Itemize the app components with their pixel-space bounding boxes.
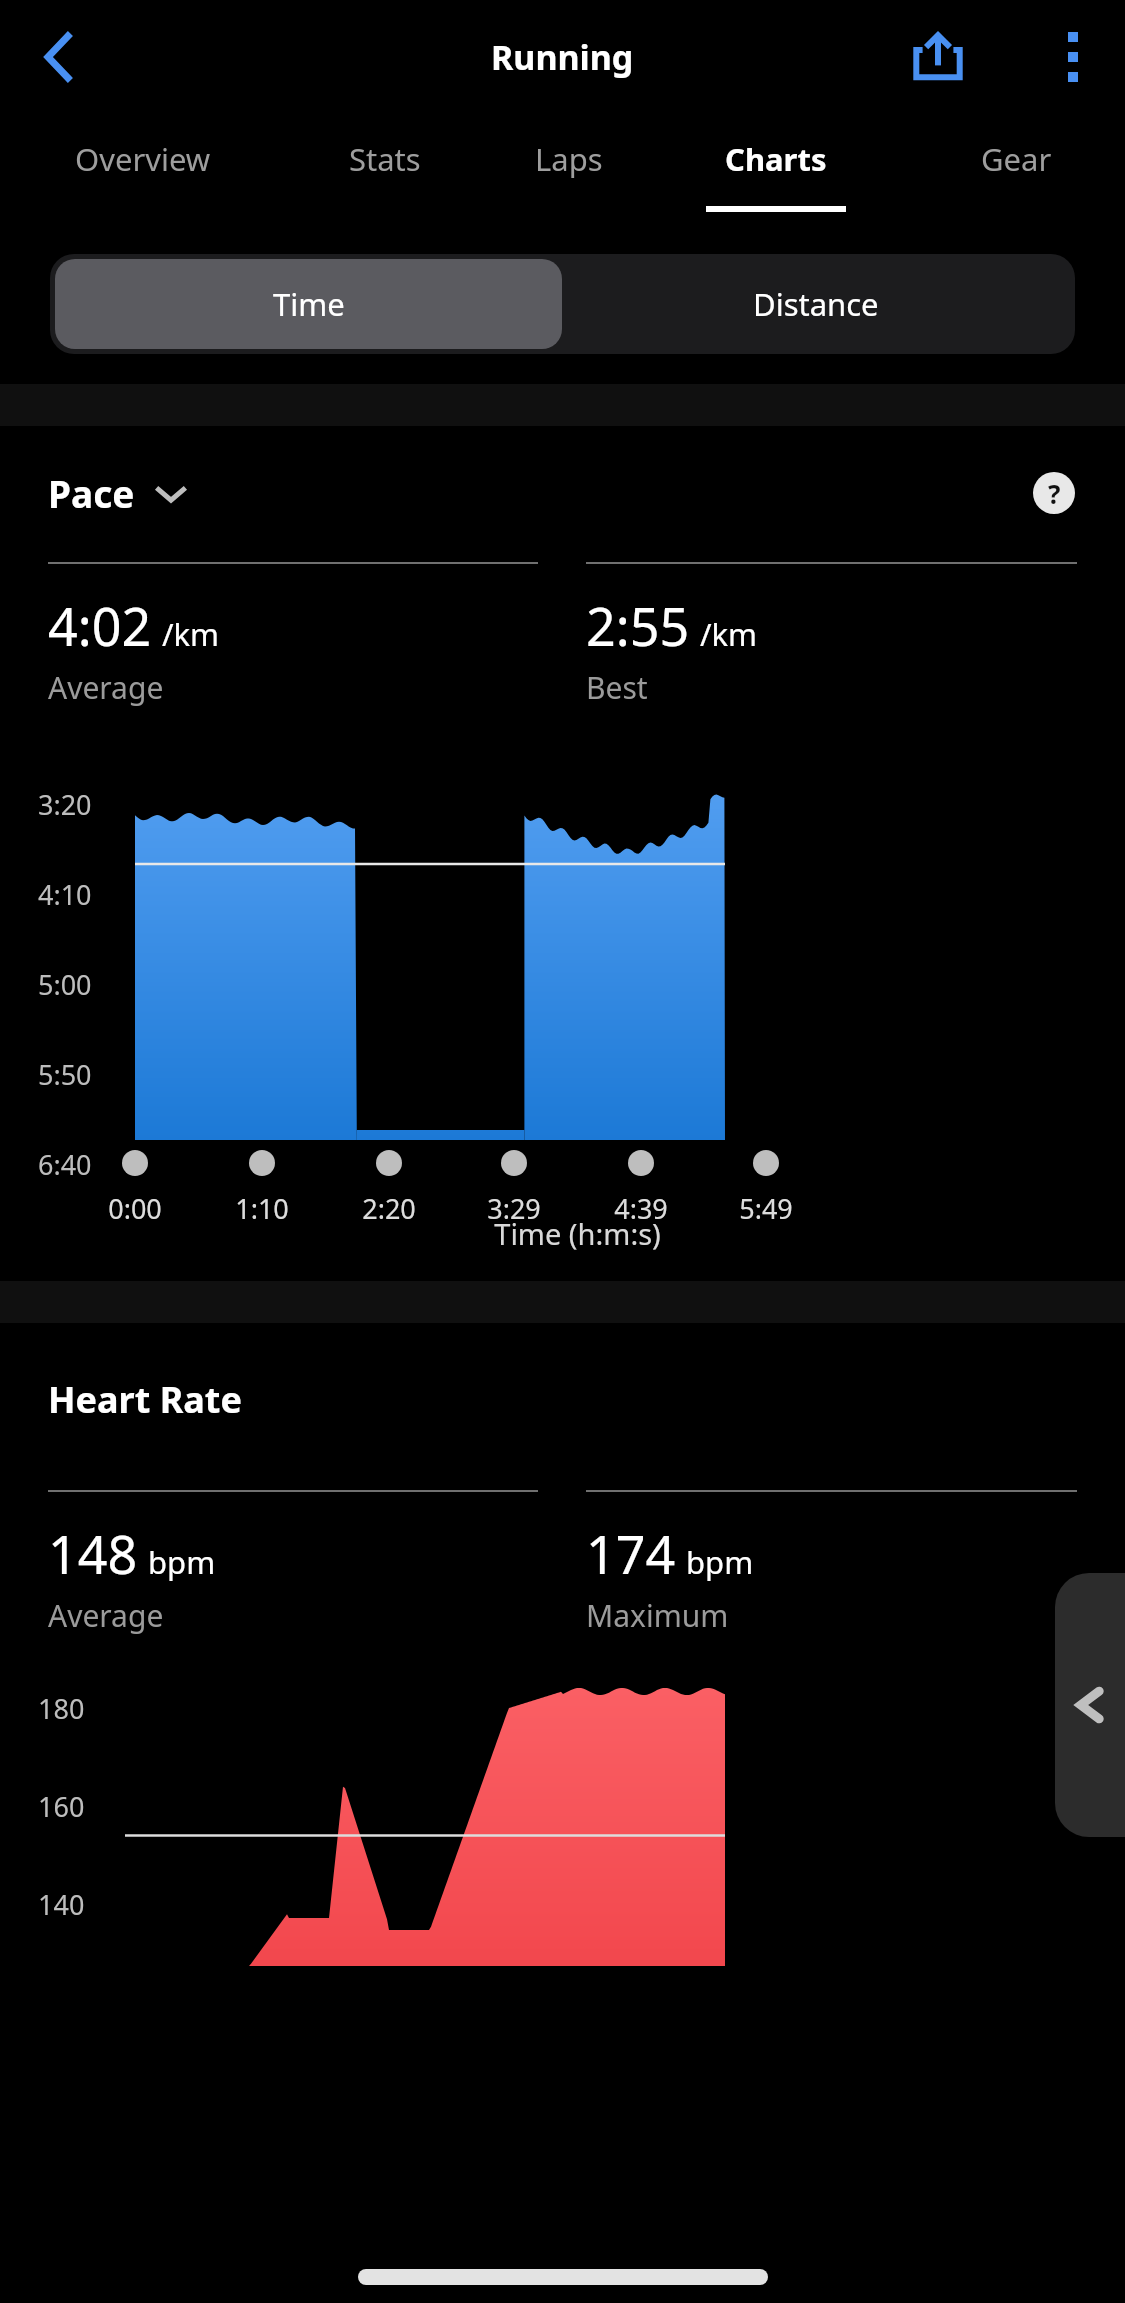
- staticText: 2:55: [586, 590, 690, 661]
- staticText: Gear: [981, 138, 1052, 180]
- staticText: 3:29: [466, 1190, 562, 1227]
- button[interactable]: Pace: [48, 468, 189, 518]
- staticText: 4:39: [593, 1190, 689, 1227]
- staticText: 5:50: [38, 1056, 92, 1093]
- staticText: 160: [38, 1788, 85, 1825]
- staticText: Best: [586, 667, 648, 708]
- staticText: Time (h:m:s): [30, 1214, 1125, 1253]
- staticText: 5:49: [718, 1190, 814, 1227]
- button[interactable]: Time: [55, 259, 562, 349]
- staticText: Distance: [753, 283, 879, 325]
- staticText: Average: [48, 667, 164, 708]
- staticText: 5:00: [38, 966, 92, 1003]
- button[interactable]: Open side panel: [1055, 1573, 1125, 1837]
- staticText: 3:20: [38, 786, 92, 823]
- button[interactable]: Laps: [501, 114, 637, 230]
- staticText: 148: [48, 1518, 138, 1589]
- button[interactable]: Charts: [696, 114, 856, 230]
- staticText: ?: [1048, 476, 1061, 511]
- staticText: Running: [491, 34, 634, 80]
- staticText: Heart Rate: [48, 1375, 242, 1424]
- staticText: Stats: [349, 138, 421, 180]
- button[interactable]: Overview: [25, 114, 261, 230]
- staticText: 180: [38, 1690, 85, 1727]
- staticText: 4:02: [48, 590, 152, 661]
- staticText: Pace: [48, 468, 135, 518]
- staticText: Laps: [535, 138, 603, 180]
- staticText: /km: [162, 613, 220, 655]
- staticText: Time: [273, 283, 345, 325]
- staticText: Overview: [75, 138, 211, 180]
- button[interactable]: Gear: [941, 114, 1091, 230]
- staticText: 4:10: [38, 876, 92, 913]
- staticText: 2:20: [341, 1190, 437, 1227]
- button[interactable]: More options: [1041, 25, 1105, 89]
- staticText: Average: [48, 1595, 164, 1636]
- staticText: /km: [700, 613, 758, 655]
- staticText: Maximum: [586, 1595, 729, 1636]
- button[interactable]: Share: [903, 22, 973, 92]
- staticText: bpm: [686, 1541, 754, 1583]
- staticText: 1:10: [214, 1190, 310, 1227]
- staticText: 6:40: [38, 1146, 92, 1183]
- button[interactable]: Stats: [310, 114, 460, 230]
- button[interactable]: Distance: [562, 259, 1070, 349]
- button[interactable]: Back: [26, 25, 90, 89]
- staticText: Charts: [725, 138, 827, 180]
- staticText: bpm: [148, 1541, 216, 1583]
- staticText: 140: [38, 1886, 85, 1923]
- button[interactable]: Help: [1031, 470, 1077, 516]
- staticText: 0:00: [87, 1190, 183, 1227]
- staticText: 174: [586, 1518, 676, 1589]
